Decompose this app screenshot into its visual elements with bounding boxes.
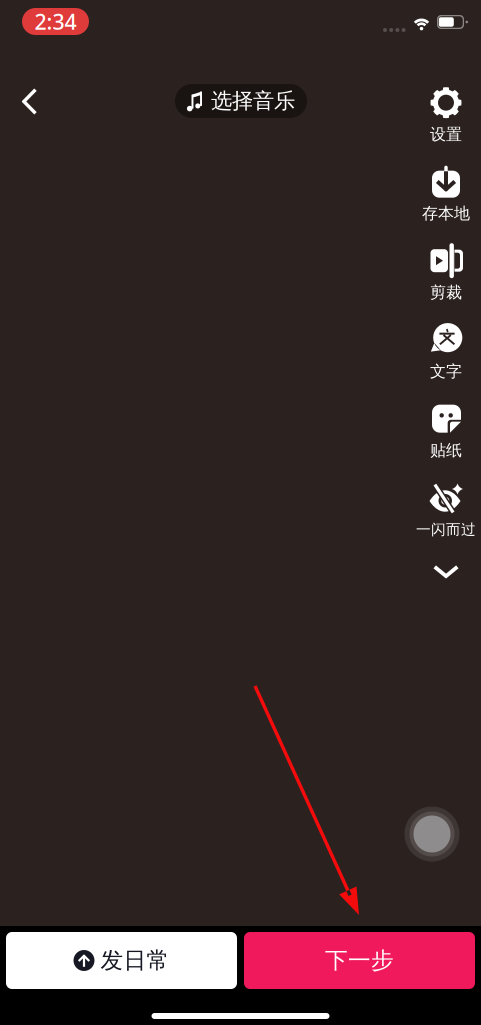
staticText: 贴纸	[430, 441, 462, 460]
button[interactable]: 剪裁	[413, 234, 479, 313]
staticText: 剪裁	[430, 283, 462, 302]
staticText: 发日常	[100, 947, 169, 974]
button[interactable]: 一闪而过	[413, 471, 479, 550]
button[interactable]: Back	[8, 75, 50, 128]
staticText: 文字	[430, 362, 462, 381]
button[interactable]: Collapse panel	[413, 550, 479, 594]
button[interactable]: Preview clip	[401, 803, 463, 865]
button[interactable]: 发日常	[6, 932, 237, 989]
button[interactable]: 设置	[413, 76, 479, 155]
button[interactable]: 选择音乐	[175, 84, 307, 118]
staticText: 选择音乐	[211, 88, 295, 114]
staticText: 2:34	[34, 7, 76, 36]
button[interactable]: 贴纸	[413, 392, 479, 471]
staticText: 设置	[430, 125, 462, 144]
staticText: 一闪而过	[416, 520, 476, 538]
staticText: 存本地	[422, 204, 470, 223]
button[interactable]: 文字	[413, 313, 479, 392]
button[interactable]: 下一步	[244, 932, 475, 989]
staticText: 下一步	[325, 947, 394, 974]
button[interactable]: 存本地	[413, 155, 479, 234]
